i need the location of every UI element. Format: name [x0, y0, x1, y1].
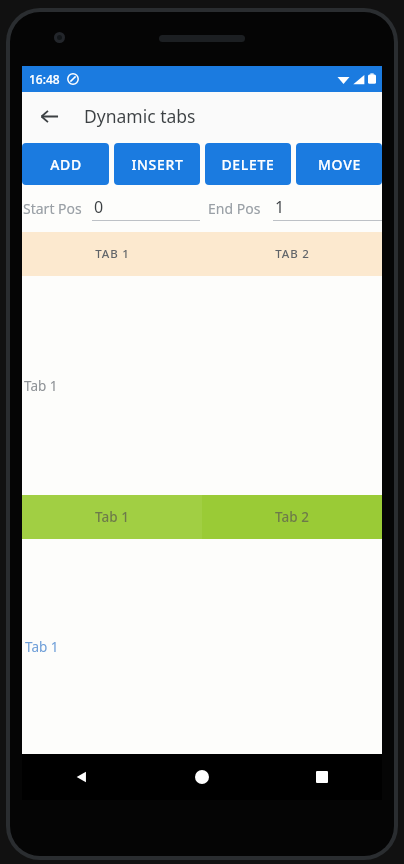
staticText: End Pos: [208, 199, 261, 218]
staticText: Tab 2: [275, 508, 309, 526]
staticText: Start Pos: [23, 199, 82, 218]
staticText: 0: [94, 196, 104, 218]
staticText: Tab 1: [24, 377, 58, 395]
button[interactable]: Navigate up: [32, 99, 66, 133]
staticText: TAB 2: [275, 246, 310, 262]
staticText: Tab 1: [95, 508, 129, 526]
staticText: INSERT: [131, 155, 184, 174]
staticText: ADD: [50, 155, 82, 174]
button[interactable]: Home: [142, 754, 262, 800]
button[interactable]: Back: [22, 754, 142, 800]
button[interactable]: DELETE: [205, 143, 291, 185]
staticText: 16:48: [29, 71, 60, 87]
button[interactable]: 0: [92, 196, 200, 221]
staticText: 1: [275, 196, 285, 218]
button[interactable]: Recent apps: [262, 754, 382, 800]
staticText: MOVE: [318, 155, 361, 174]
staticText: DELETE: [221, 155, 275, 174]
button[interactable]: TAB 2: [202, 232, 382, 276]
staticText: Dynamic tabs: [84, 104, 196, 128]
button[interactable]: Tab 2: [202, 495, 382, 539]
button[interactable]: MOVE: [296, 143, 382, 185]
button[interactable]: 1: [273, 196, 382, 221]
button[interactable]: ADD: [22, 143, 109, 185]
button[interactable]: TAB 1: [22, 232, 202, 276]
staticText: TAB 1: [95, 246, 130, 262]
button[interactable]: Tab 1: [22, 495, 202, 539]
button[interactable]: INSERT: [114, 143, 200, 185]
staticText: Tab 1: [25, 638, 59, 656]
